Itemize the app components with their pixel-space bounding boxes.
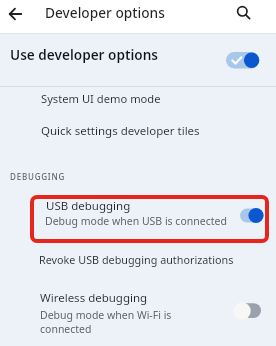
button[interactable] xyxy=(232,1,256,25)
button[interactable]: System UI demo mode xyxy=(0,87,276,116)
button[interactable] xyxy=(0,34,276,86)
button[interactable]: USB debugging xyxy=(0,196,276,242)
button[interactable] xyxy=(4,2,27,25)
staticText: Revoke USB debugging authorizations xyxy=(39,252,234,267)
button[interactable]: Revoke USB debugging authorizations xyxy=(0,247,276,274)
staticText: Wireless debugging xyxy=(40,290,148,306)
staticText: connected xyxy=(40,322,92,336)
staticText: Use developer options xyxy=(10,45,159,64)
staticText: USB debugging xyxy=(46,198,131,214)
staticText: System UI demo mode xyxy=(41,91,161,106)
staticText: Debug mode when Wi-Fi is xyxy=(40,308,172,322)
staticText: DEBUGGING xyxy=(10,171,66,182)
staticText: Debug mode when USB is connected xyxy=(45,214,227,228)
button[interactable]: Quick settings developer tiles xyxy=(0,116,276,147)
button[interactable]: Wireless debugging xyxy=(0,288,276,341)
staticText: Developer options xyxy=(45,3,165,22)
staticText: Quick settings developer tiles xyxy=(41,123,200,139)
